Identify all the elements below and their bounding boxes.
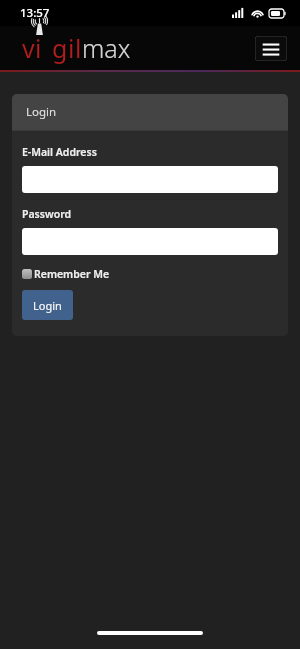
staticText: Login bbox=[26, 104, 57, 120]
staticText: l bbox=[75, 31, 82, 65]
staticText: Password bbox=[22, 207, 72, 221]
staticText: Login bbox=[33, 298, 62, 313]
staticText: max bbox=[82, 31, 131, 65]
button[interactable]: Remember Me bbox=[22, 267, 110, 281]
staticText: i bbox=[35, 31, 42, 65]
staticText: E-Mail Address bbox=[22, 145, 97, 159]
button[interactable] bbox=[22, 166, 278, 193]
staticText: 13:57 bbox=[20, 5, 50, 21]
button[interactable] bbox=[22, 228, 278, 255]
staticText: v bbox=[22, 31, 35, 65]
button[interactable]: Open menu bbox=[255, 36, 287, 61]
staticText: i bbox=[68, 31, 75, 65]
staticText: Remember Me bbox=[34, 267, 110, 281]
button[interactable]: Login bbox=[22, 290, 73, 320]
staticText: g bbox=[52, 31, 68, 65]
